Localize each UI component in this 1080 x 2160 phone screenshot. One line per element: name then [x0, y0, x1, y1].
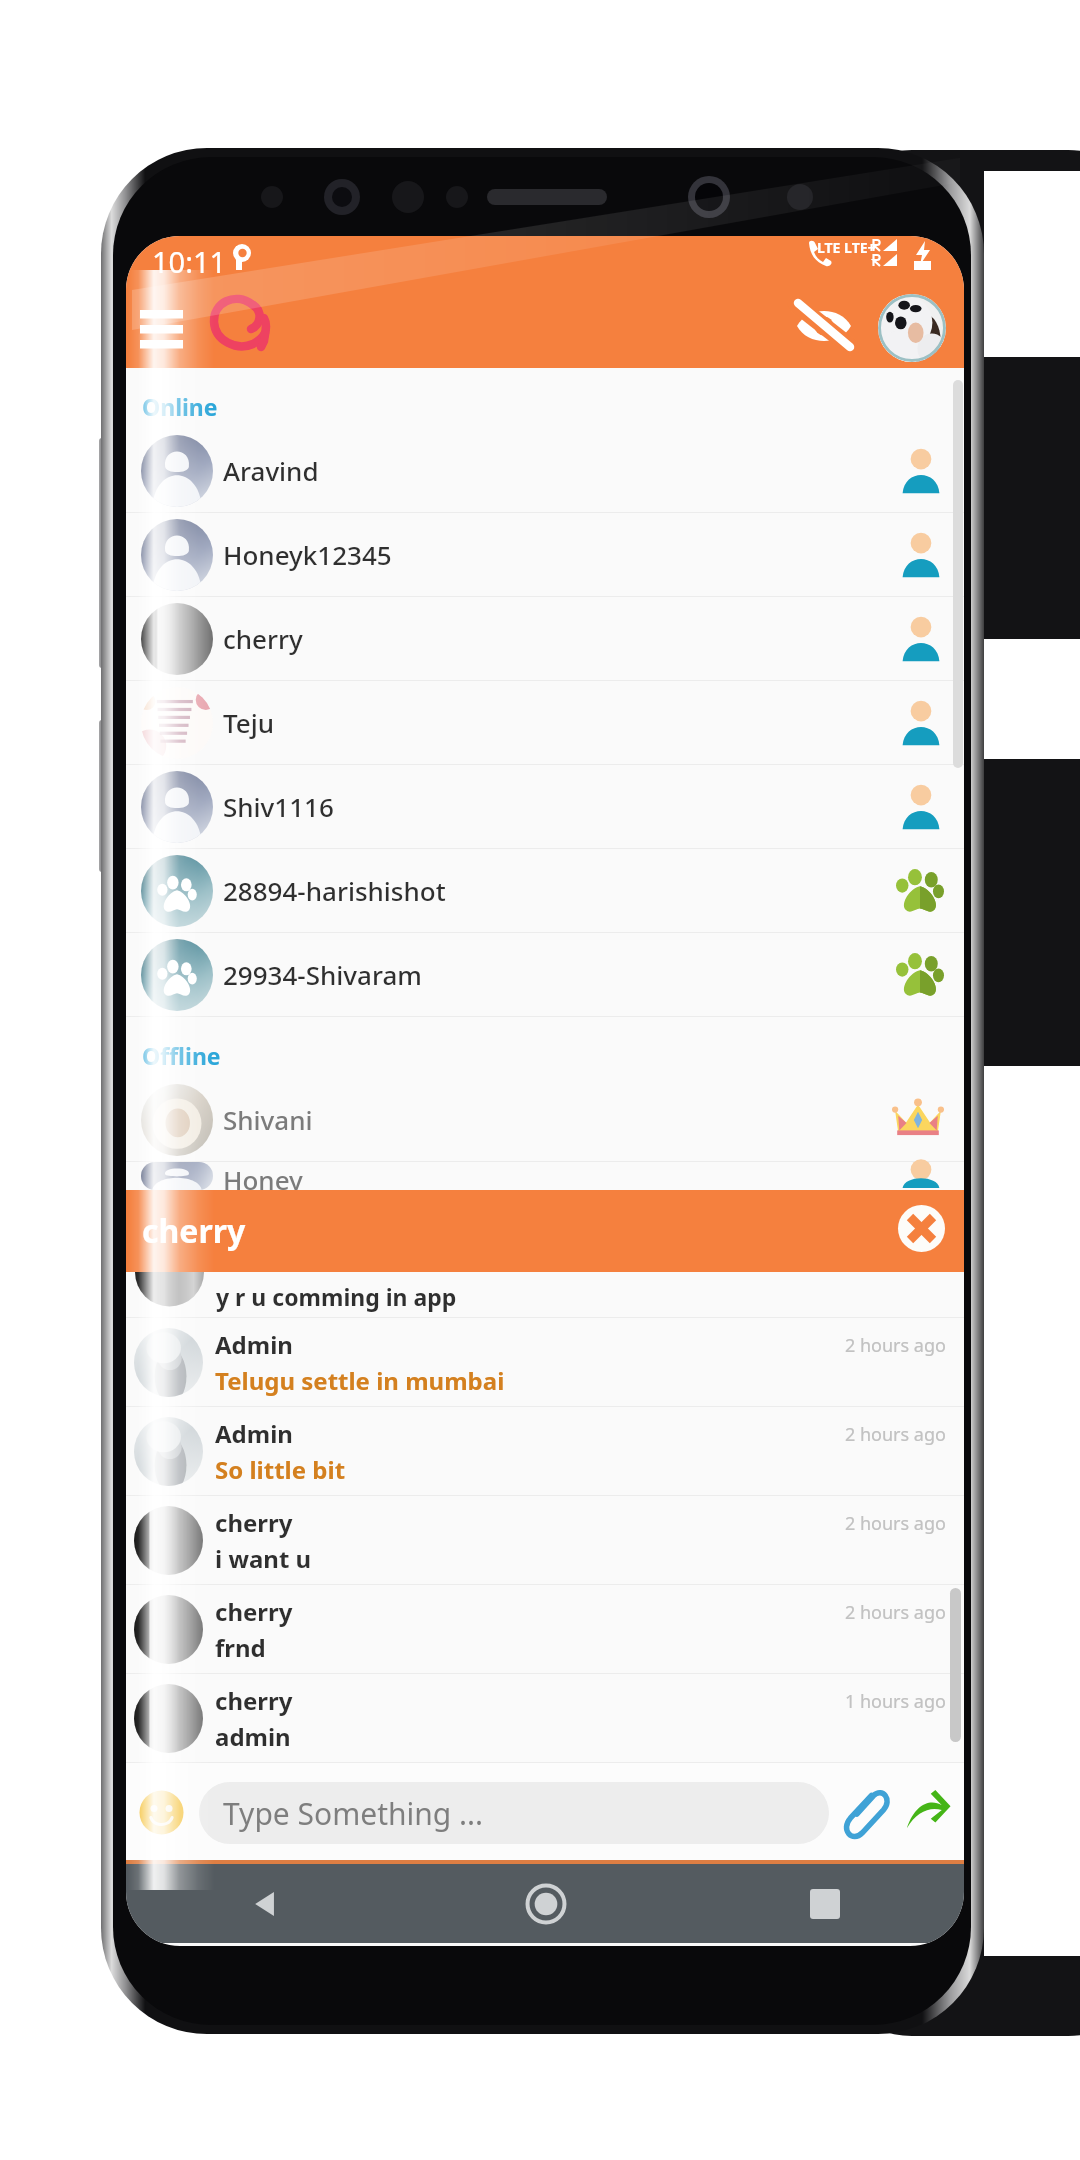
staticText: Honey [223, 1162, 303, 1190]
staticText: admin [215, 1720, 291, 1753]
staticText: Type Something ... [223, 1793, 484, 1834]
button[interactable]: cherry [126, 597, 964, 680]
staticText: y r u comming in app [216, 1281, 457, 1312]
staticText: 29934-Shivaram [223, 957, 422, 992]
button[interactable]: y r u comming in app [126, 1272, 964, 1317]
button[interactable]: Honey [126, 1162, 964, 1190]
button[interactable]: Aravind [126, 429, 964, 512]
button[interactable]: cherry [126, 1496, 964, 1584]
staticText: i want u [215, 1542, 312, 1575]
staticText: frnd [215, 1631, 266, 1664]
staticText: cherry [215, 1506, 293, 1539]
button[interactable]: Admin [126, 1318, 964, 1406]
staticText: Shiv1116 [223, 789, 334, 824]
button[interactable]: Type Something ... [199, 1782, 829, 1844]
button[interactable]: cherry [126, 1190, 964, 1272]
button[interactable]: Profile picture [878, 294, 946, 362]
staticText: 2 hours ago [845, 1600, 946, 1625]
staticText: LTE LTE+ [817, 238, 876, 257]
staticText: Admin [215, 1328, 293, 1361]
button[interactable]: Home [519, 1877, 573, 1931]
staticText: cherry [142, 1209, 246, 1253]
button[interactable]: 28894-harishishot [126, 849, 964, 932]
staticText: cherry [223, 621, 303, 656]
button[interactable]: 29934-Shivaram [126, 933, 964, 1016]
staticText: Aravind [223, 453, 319, 488]
staticText: Teju [223, 705, 275, 740]
staticText: Offline [142, 1040, 964, 1071]
staticText: 1 hours ago [845, 1689, 946, 1714]
button[interactable]: Teju [126, 681, 964, 764]
button[interactable]: Shiv1116 [126, 765, 964, 848]
staticText: Telugu settle in mumbai [215, 1364, 505, 1397]
button[interactable]: Attach file [843, 1787, 889, 1839]
staticText: cherry [215, 1595, 293, 1628]
staticText: 2 hours ago [845, 1422, 946, 1447]
button[interactable]: Honeyk12345 [126, 513, 964, 596]
button[interactable]: cherry [126, 1674, 964, 1762]
staticText: cherry [215, 1684, 293, 1717]
staticText: 28894-harishishot [223, 873, 446, 908]
button[interactable]: Invisible mode [790, 297, 858, 355]
button[interactable]: Admin [126, 1407, 964, 1495]
staticText: Honeyk12345 [223, 537, 392, 572]
button[interactable]: cherry [126, 1585, 964, 1673]
staticText: So little bit [215, 1453, 346, 1486]
button[interactable]: Close chat [898, 1205, 945, 1252]
staticText: Shivani [223, 1102, 313, 1137]
staticText: 2 hours ago [845, 1511, 946, 1536]
button[interactable]: Shivani [126, 1078, 964, 1161]
staticText: 10:11 [152, 242, 227, 281]
button[interactable]: Emoji [139, 1790, 184, 1835]
button[interactable]: Recents [798, 1877, 852, 1931]
staticText: 2 hours ago [845, 1333, 946, 1358]
staticText: Online [142, 391, 964, 422]
button[interactable]: Open menu [132, 297, 191, 354]
button[interactable]: Send message [905, 1789, 951, 1837]
staticText: Admin [215, 1417, 293, 1450]
button[interactable]: Back [239, 1877, 293, 1931]
